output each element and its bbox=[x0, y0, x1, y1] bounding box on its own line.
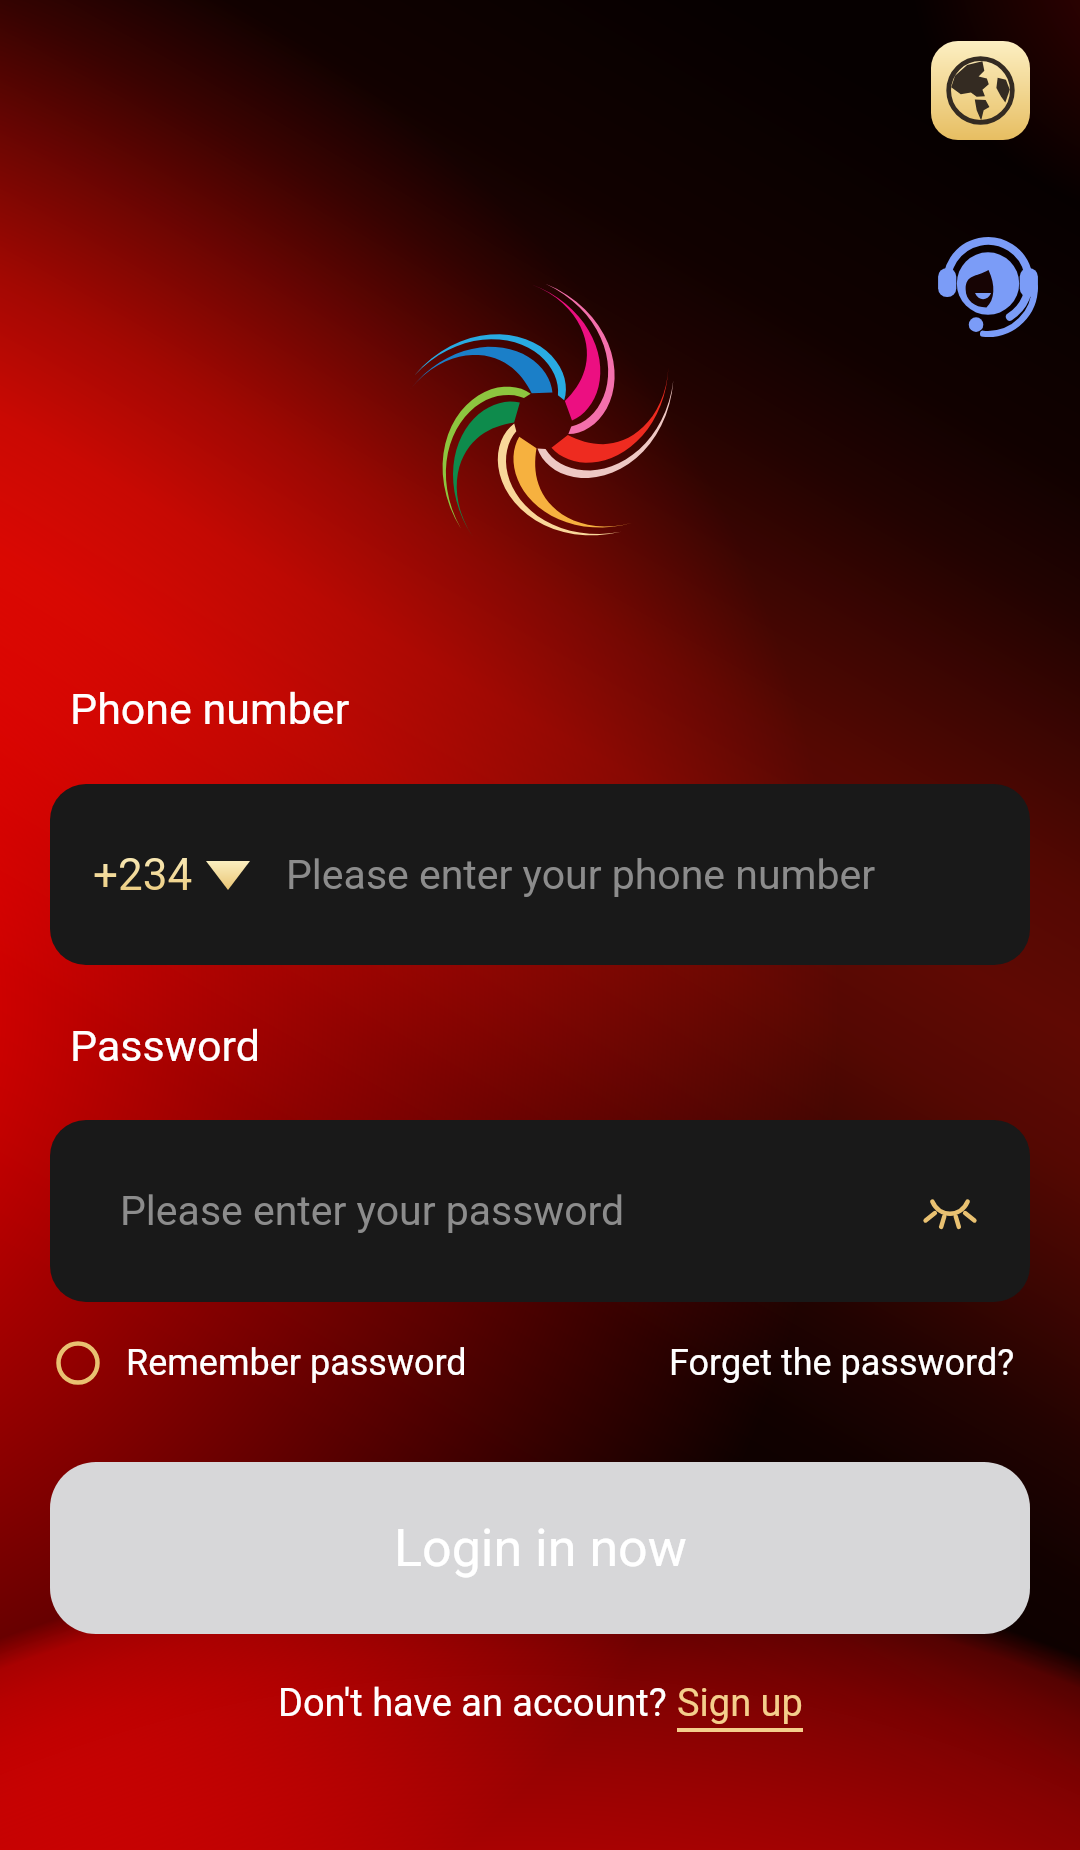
staticText: Remember password bbox=[126, 1342, 467, 1384]
button[interactable]: Forget the password? bbox=[669, 1342, 1015, 1384]
button[interactable]: +234 bbox=[50, 784, 1030, 965]
button[interactable]: Login in now bbox=[50, 1462, 1030, 1634]
button[interactable]: Customer support bbox=[935, 229, 1041, 335]
staticText: Phone number bbox=[70, 684, 350, 734]
staticText: Sign up bbox=[677, 1681, 803, 1726]
staticText: Login in now bbox=[394, 1518, 687, 1579]
button[interactable]: Language bbox=[931, 41, 1030, 140]
staticText: Please enter your password bbox=[120, 1187, 625, 1235]
staticText: Don't have an account? bbox=[278, 1681, 677, 1726]
staticText: Password bbox=[70, 1021, 260, 1071]
staticText: +234 bbox=[93, 849, 193, 901]
button[interactable]: Remember password bbox=[56, 1341, 467, 1385]
button[interactable]: Show password bbox=[918, 1179, 982, 1243]
staticText: Please enter your phone number bbox=[286, 851, 876, 899]
button[interactable]: Sign up bbox=[677, 1681, 803, 1732]
button[interactable]: Please enter your password bbox=[50, 1120, 1030, 1302]
